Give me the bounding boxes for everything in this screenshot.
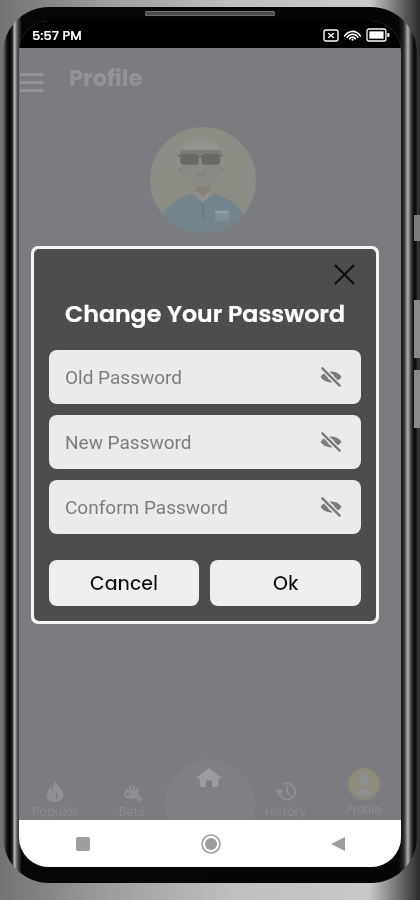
staticText: Profile — [69, 62, 143, 93]
button[interactable]: Popular — [26, 781, 84, 820]
button[interactable]: New Password — [49, 415, 361, 469]
staticText: Cancel — [90, 570, 159, 597]
button[interactable]: Back — [274, 820, 401, 867]
button[interactable]: Ok — [210, 560, 361, 606]
button[interactable]: Old Password — [49, 350, 361, 404]
button[interactable]: Open navigation menu — [19, 48, 64, 114]
staticText: Profile — [346, 802, 381, 818]
staticText: Conform Password — [65, 496, 228, 518]
button[interactable]: Profile photo — [150, 127, 256, 233]
staticText: Old Password — [65, 366, 183, 388]
staticText: Change Your Password — [49, 297, 361, 330]
button[interactable]: Home — [187, 757, 231, 798]
staticText: Ok — [273, 570, 299, 597]
staticText: New Password — [65, 431, 192, 453]
button[interactable]: Conform Password — [49, 480, 361, 534]
staticText: Popular — [32, 803, 78, 820]
button[interactable]: Profile — [338, 768, 388, 818]
button[interactable]: Close — [327, 257, 361, 291]
button[interactable]: Cancel — [49, 560, 199, 606]
button[interactable]: Recents — [19, 820, 147, 867]
button[interactable]: Home — [147, 820, 274, 867]
staticText: 5:57 PM — [32, 26, 82, 44]
button[interactable]: Bets — [103, 781, 161, 820]
staticText: Bets — [119, 803, 145, 820]
staticText: History — [265, 803, 306, 820]
button[interactable]: History — [256, 781, 314, 820]
